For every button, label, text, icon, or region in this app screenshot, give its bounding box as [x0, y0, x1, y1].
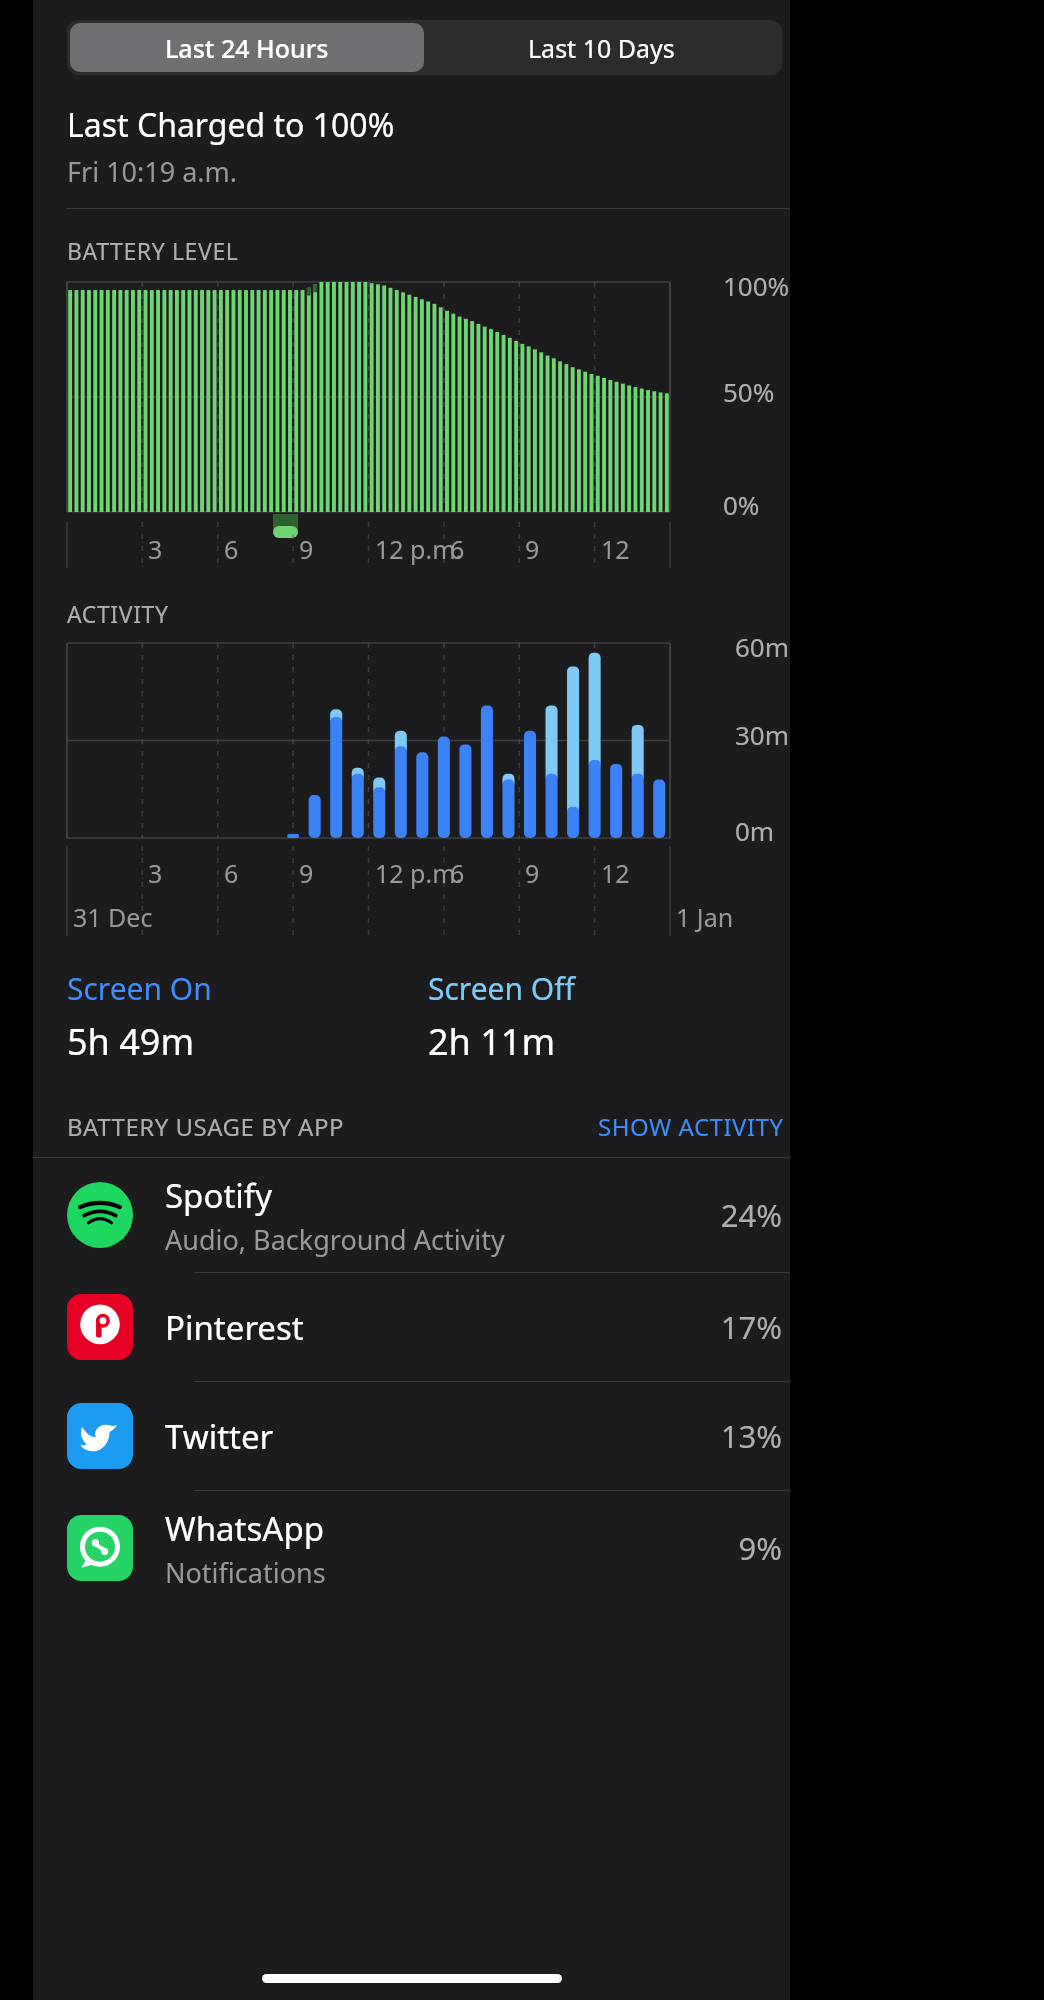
staticText: 5h 49m	[67, 1017, 195, 1066]
staticText: 9	[525, 532, 540, 566]
staticText: Pinterest	[165, 1305, 304, 1350]
staticText: 9	[299, 532, 314, 566]
staticText: Last 24 Hours	[165, 31, 329, 65]
staticText: 13%	[720, 1415, 782, 1457]
staticText: 9	[299, 856, 314, 890]
staticText: 60m	[735, 629, 790, 664]
staticText: Last 10 Days	[528, 31, 675, 65]
staticText: SHOW ACTIVITY	[598, 1110, 784, 1143]
staticText: 12 p.m.	[375, 856, 463, 890]
staticText: Spotify	[165, 1173, 272, 1218]
staticText: 1 Jan	[676, 900, 734, 934]
staticText: 6	[224, 532, 239, 566]
staticText: 0m	[735, 813, 775, 848]
staticText: 6	[450, 856, 465, 890]
button[interactable]: WhatsApp	[33, 1491, 790, 1605]
staticText: 100%	[723, 268, 790, 303]
staticText: Last Charged to 100%	[67, 103, 395, 147]
staticText: 2h 11m	[428, 1017, 556, 1066]
staticText: 24%	[720, 1194, 782, 1236]
staticText: Notifications	[165, 1554, 326, 1591]
staticText: 3	[148, 532, 163, 566]
staticText: 9	[525, 856, 540, 890]
button[interactable]: Last 10 Days	[424, 23, 779, 72]
staticText: WhatsApp	[165, 1506, 324, 1551]
staticText: 3	[148, 856, 163, 890]
staticText: 0%	[723, 487, 760, 522]
staticText: Fri 10:19 a.m.	[67, 153, 238, 190]
button[interactable]: Pinterest	[33, 1273, 790, 1382]
staticText: BATTERY LEVEL	[67, 235, 239, 266]
staticText: 12	[601, 532, 630, 566]
staticText: 6	[224, 856, 239, 890]
staticText: BATTERY USAGE BY APP	[67, 1110, 344, 1143]
button[interactable]: Last 24 Hours	[70, 23, 424, 72]
button[interactable]: Screen Off	[428, 968, 575, 1009]
staticText: Audio, Background Activity	[165, 1221, 505, 1258]
button[interactable]: Screen On	[67, 968, 212, 1009]
staticText: 6	[450, 532, 465, 566]
button[interactable]: Spotify	[33, 1158, 790, 1273]
staticText: 9%	[738, 1527, 782, 1569]
staticText: 31 Dec	[73, 900, 153, 934]
button[interactable]: Twitter	[33, 1382, 790, 1491]
staticText: 50%	[723, 374, 775, 409]
button[interactable]: SHOW ACTIVITY	[598, 1110, 784, 1143]
staticText: Twitter	[165, 1414, 274, 1459]
staticText: 17%	[720, 1306, 782, 1348]
staticText: ACTIVITY	[67, 598, 169, 629]
staticText: 12	[601, 856, 630, 890]
staticText: 12 p.m.	[375, 532, 463, 566]
staticText: 30m	[735, 717, 790, 752]
